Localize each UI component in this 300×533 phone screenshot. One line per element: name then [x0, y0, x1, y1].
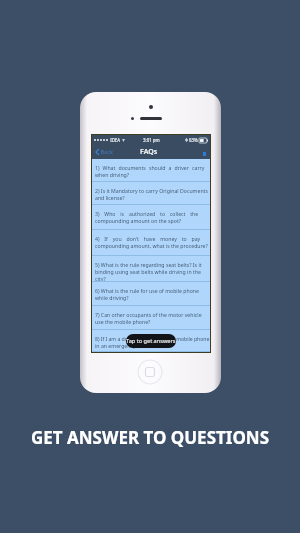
staticText: 3:01 pm — [143, 137, 160, 143]
staticText: 1) What documents should a driver carry — [95, 164, 205, 171]
button[interactable]: Tap to get answers — [126, 334, 176, 348]
staticText: Back — [99, 148, 113, 156]
staticText: FAQs — [140, 147, 158, 157]
staticText: city? — [95, 275, 106, 282]
staticText: and license? — [95, 194, 125, 201]
staticText: use the mobile phone? — [95, 318, 151, 325]
staticText: 2) Is it Mandatory to carry Original Doc… — [95, 187, 208, 194]
staticText: compounding amount on the spot? — [95, 217, 182, 224]
button[interactable]: 3) Who is authorized to collect the — [92, 205, 210, 230]
button[interactable]: Back — [92, 146, 116, 158]
staticText: binding using seat belts while driving i… — [95, 268, 202, 275]
staticText: 63% — [189, 137, 198, 143]
staticText: while driving? — [95, 294, 129, 301]
staticText: when driving? — [95, 171, 130, 178]
button[interactable]: 8) If I am a driver and have to use mobi… — [92, 330, 210, 352]
staticText: IDEA — [109, 137, 121, 143]
staticText: Tap to get answers — [126, 337, 176, 345]
staticText: GET ANSWER TO QUESTIONS — [0, 426, 300, 449]
staticText: 7) Can other occupants of the motor vehi… — [95, 311, 202, 318]
button[interactable]: 7) Can other occupants of the motor vehi… — [92, 306, 210, 330]
staticText: 6) What is the rule for use of mobile ph… — [95, 287, 199, 294]
button[interactable]: 2) Is it Mandatory to carry Original Doc… — [92, 182, 210, 205]
staticText: compounding amount, what is the procedur… — [95, 242, 208, 249]
staticText: 4) If you don't have money to pay — [95, 235, 201, 242]
button[interactable]: 1) What documents should a driver carry — [92, 159, 210, 182]
staticText: in an emergency — [95, 342, 136, 349]
staticText: 5) What is the rule regarding seat belts… — [95, 261, 202, 268]
button[interactable]: Menu — [199, 149, 210, 159]
staticText: 3) Who is authorized to collect the — [95, 210, 199, 217]
button[interactable]: 4) If you don't have money to pay — [92, 230, 210, 256]
button[interactable]: 6) What is the rule for use of mobile ph… — [92, 282, 210, 306]
button[interactable]: 5) What is the rule regarding seat belts… — [92, 256, 210, 282]
staticText: 8) If I am a driver and have to use mobi… — [95, 335, 210, 342]
